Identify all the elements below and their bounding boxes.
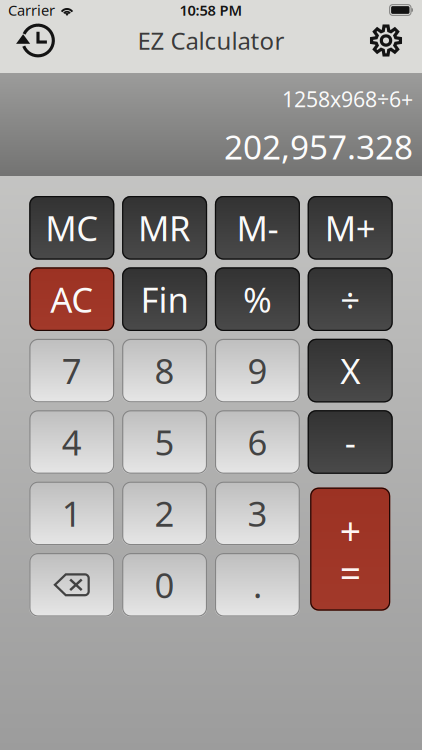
- staticText: AC: [50, 276, 93, 322]
- staticText: 10:58 PM: [179, 0, 242, 20]
- staticText: MR: [138, 205, 191, 251]
- staticText: -: [345, 419, 356, 465]
- staticText: 9: [247, 348, 267, 394]
- button[interactable]: M-: [215, 196, 300, 260]
- staticText: 5: [155, 419, 175, 465]
- button[interactable]: Fin: [122, 267, 207, 331]
- button[interactable]: History: [10, 19, 66, 61]
- button[interactable]: Delete: [29, 553, 114, 617]
- button[interactable]: AC: [29, 267, 114, 331]
- staticText: =: [340, 548, 361, 597]
- staticText: 6: [247, 419, 267, 465]
- button[interactable]: %: [215, 267, 300, 331]
- staticText: .: [253, 562, 262, 608]
- button[interactable]: X: [308, 339, 393, 402]
- staticText: X: [340, 348, 360, 394]
- button[interactable]: 2: [122, 482, 207, 545]
- staticText: 1: [62, 490, 82, 536]
- button[interactable]: MR: [122, 196, 207, 260]
- button[interactable]: 9: [215, 339, 300, 402]
- staticText: Carrier: [8, 0, 55, 20]
- button[interactable]: -: [308, 410, 393, 474]
- staticText: MC: [45, 205, 98, 251]
- staticText: 0: [155, 562, 175, 608]
- button[interactable]: M+: [308, 196, 393, 260]
- staticText: 1258x968÷6+: [282, 85, 413, 113]
- button[interactable]: Settings: [360, 19, 412, 61]
- staticText: 3: [247, 490, 267, 536]
- staticText: 2: [155, 490, 175, 536]
- staticText: 8: [155, 348, 175, 394]
- staticText: ÷: [340, 276, 360, 322]
- staticText: 4: [62, 419, 82, 465]
- button[interactable]: .: [215, 553, 300, 617]
- staticText: +: [340, 506, 361, 555]
- button[interactable]: 4: [29, 410, 114, 474]
- staticText: 7: [62, 348, 82, 394]
- button[interactable]: 5: [122, 410, 207, 474]
- staticText: 202,957.328: [224, 124, 413, 169]
- staticText: M-: [236, 205, 278, 251]
- button[interactable]: MC: [29, 196, 114, 260]
- staticText: Fin: [141, 276, 189, 322]
- button[interactable]: 0: [122, 553, 207, 617]
- button[interactable]: 6: [215, 410, 300, 474]
- button[interactable]: 3: [215, 482, 300, 545]
- button[interactable]: 1: [29, 482, 114, 545]
- staticText: M+: [325, 205, 376, 251]
- button[interactable]: 8: [122, 339, 207, 402]
- staticText: EZ Calculator: [137, 25, 284, 56]
- button[interactable]: ÷: [308, 267, 393, 331]
- button[interactable]: +: [310, 488, 390, 611]
- button[interactable]: 7: [29, 339, 114, 402]
- staticText: %: [243, 276, 272, 322]
